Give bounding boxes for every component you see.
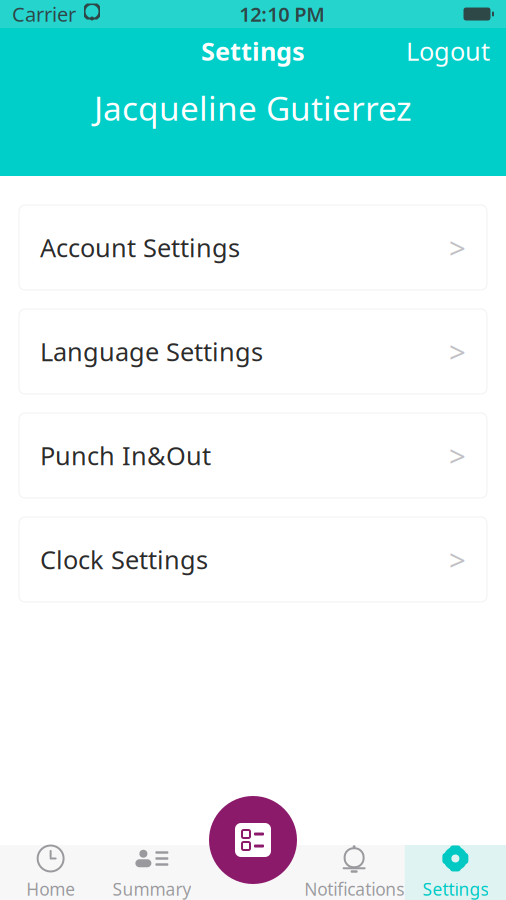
staticText: > [449,332,466,371]
button[interactable]: Language Settings [19,309,487,394]
staticText: Language Settings [40,335,263,368]
button[interactable]: Summary [101,845,202,900]
button[interactable]: Punch In&Out [19,413,487,498]
staticText: Settings [422,877,488,900]
staticText: Carrier [12,1,76,27]
staticText: > [449,228,466,267]
button[interactable]: Clock Settings [19,517,487,602]
staticText: > [449,436,466,475]
staticText: Account Settings [40,231,240,264]
button[interactable]: Settings [405,845,506,900]
staticText: Notifications [304,877,404,900]
staticText: Summary [112,877,191,900]
button[interactable]: Notifications [303,845,405,900]
staticText: 12:10 PM [239,1,325,27]
button[interactable]: Home [0,845,101,900]
staticText: Logout [406,34,490,68]
staticText: Clock Settings [40,543,208,576]
staticText: > [449,540,466,579]
staticText: Jacqueline Gutierrez [94,86,412,130]
button[interactable]: Logout [390,25,506,77]
button[interactable]: Account Settings [19,205,487,290]
staticText: Home [26,877,75,900]
button[interactable]: New entry [209,796,297,884]
staticText: Punch In&Out [40,439,211,472]
staticText: Settings [201,34,305,68]
